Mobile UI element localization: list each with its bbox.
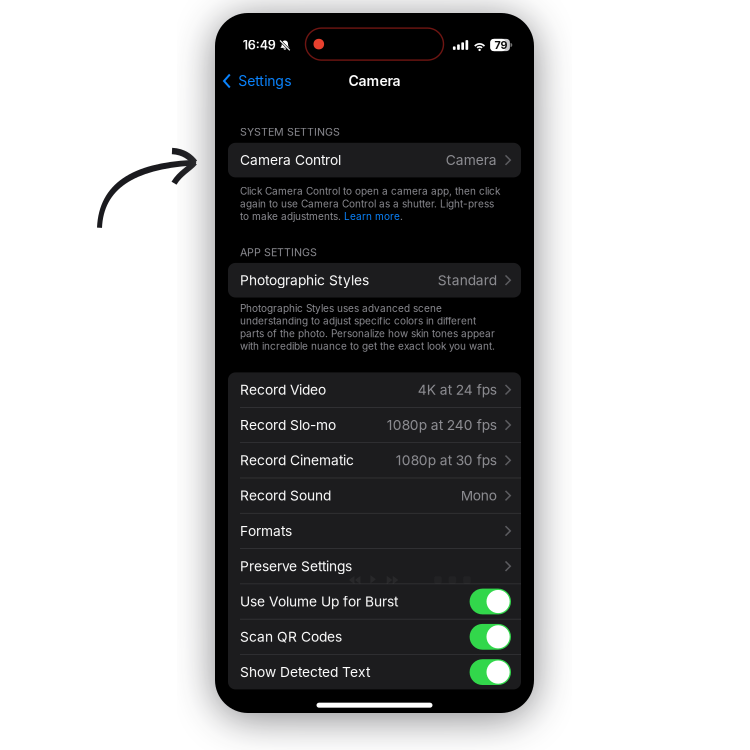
staticText: Learn more xyxy=(344,210,400,222)
staticText: 79 xyxy=(494,38,507,51)
staticText: Record Slo-mo xyxy=(240,417,336,433)
button[interactable]: Settings xyxy=(215,67,298,94)
button[interactable]: Record Sound xyxy=(228,478,521,513)
button[interactable]: Scan QR Codes xyxy=(470,624,511,650)
staticText: Photographic Styles uses advanced scene xyxy=(240,302,442,314)
staticText: Settings xyxy=(238,72,291,89)
staticText: Show Detected Text xyxy=(240,664,370,680)
button[interactable]: Use Volume Up for Burst xyxy=(470,589,511,614)
staticText: Record Video xyxy=(240,381,326,398)
staticText: Click Camera Control to open a camera ap… xyxy=(240,185,500,197)
staticText: 16:49 xyxy=(243,37,276,53)
staticText: Photographic Styles xyxy=(240,272,369,288)
staticText: 1080p at 240 fps xyxy=(387,417,497,433)
staticText: again to use Camera Control as a shutter… xyxy=(240,198,494,210)
staticText: APP SETTINGS xyxy=(240,246,317,259)
staticText: with incredible nuance to get the exact … xyxy=(240,340,495,352)
staticText: 4K at 24 fps xyxy=(418,381,497,398)
staticText: Use Volume Up for Burst xyxy=(240,593,398,610)
button[interactable]: Camera Control xyxy=(228,143,521,177)
staticText: SYSTEM SETTINGS xyxy=(240,125,340,138)
staticText: Camera xyxy=(348,72,400,89)
staticText: Record Cinematic xyxy=(240,452,354,469)
staticText: . xyxy=(400,210,403,222)
button[interactable]: Record Slo-mo xyxy=(228,408,521,442)
button[interactable]: Record Video xyxy=(228,372,521,407)
staticText: Preserve Settings xyxy=(240,558,352,574)
staticText: Scan QR Codes xyxy=(240,628,342,645)
button[interactable]: Record Cinematic xyxy=(228,443,521,478)
button[interactable]: Show Detected Text xyxy=(470,659,511,685)
staticText: Record Sound xyxy=(240,487,331,504)
staticText: Mono xyxy=(461,487,497,504)
staticText: 1080p at 30 fps xyxy=(396,452,497,469)
button[interactable]: Preserve Settings xyxy=(228,549,521,583)
button[interactable]: Formats xyxy=(228,514,521,548)
staticText: Formats xyxy=(240,523,292,539)
staticText: Standard xyxy=(438,272,497,288)
button[interactable]: Photographic Styles xyxy=(228,263,521,297)
staticText: Camera xyxy=(446,152,497,168)
button[interactable]: Learn more xyxy=(344,210,400,222)
staticText: Camera Control xyxy=(240,152,341,168)
staticText: parts of the photo. Personalize how skin… xyxy=(240,327,495,340)
staticText: understanding to adjust specific colors … xyxy=(240,315,476,327)
staticText: to make adjustments. xyxy=(240,210,344,222)
